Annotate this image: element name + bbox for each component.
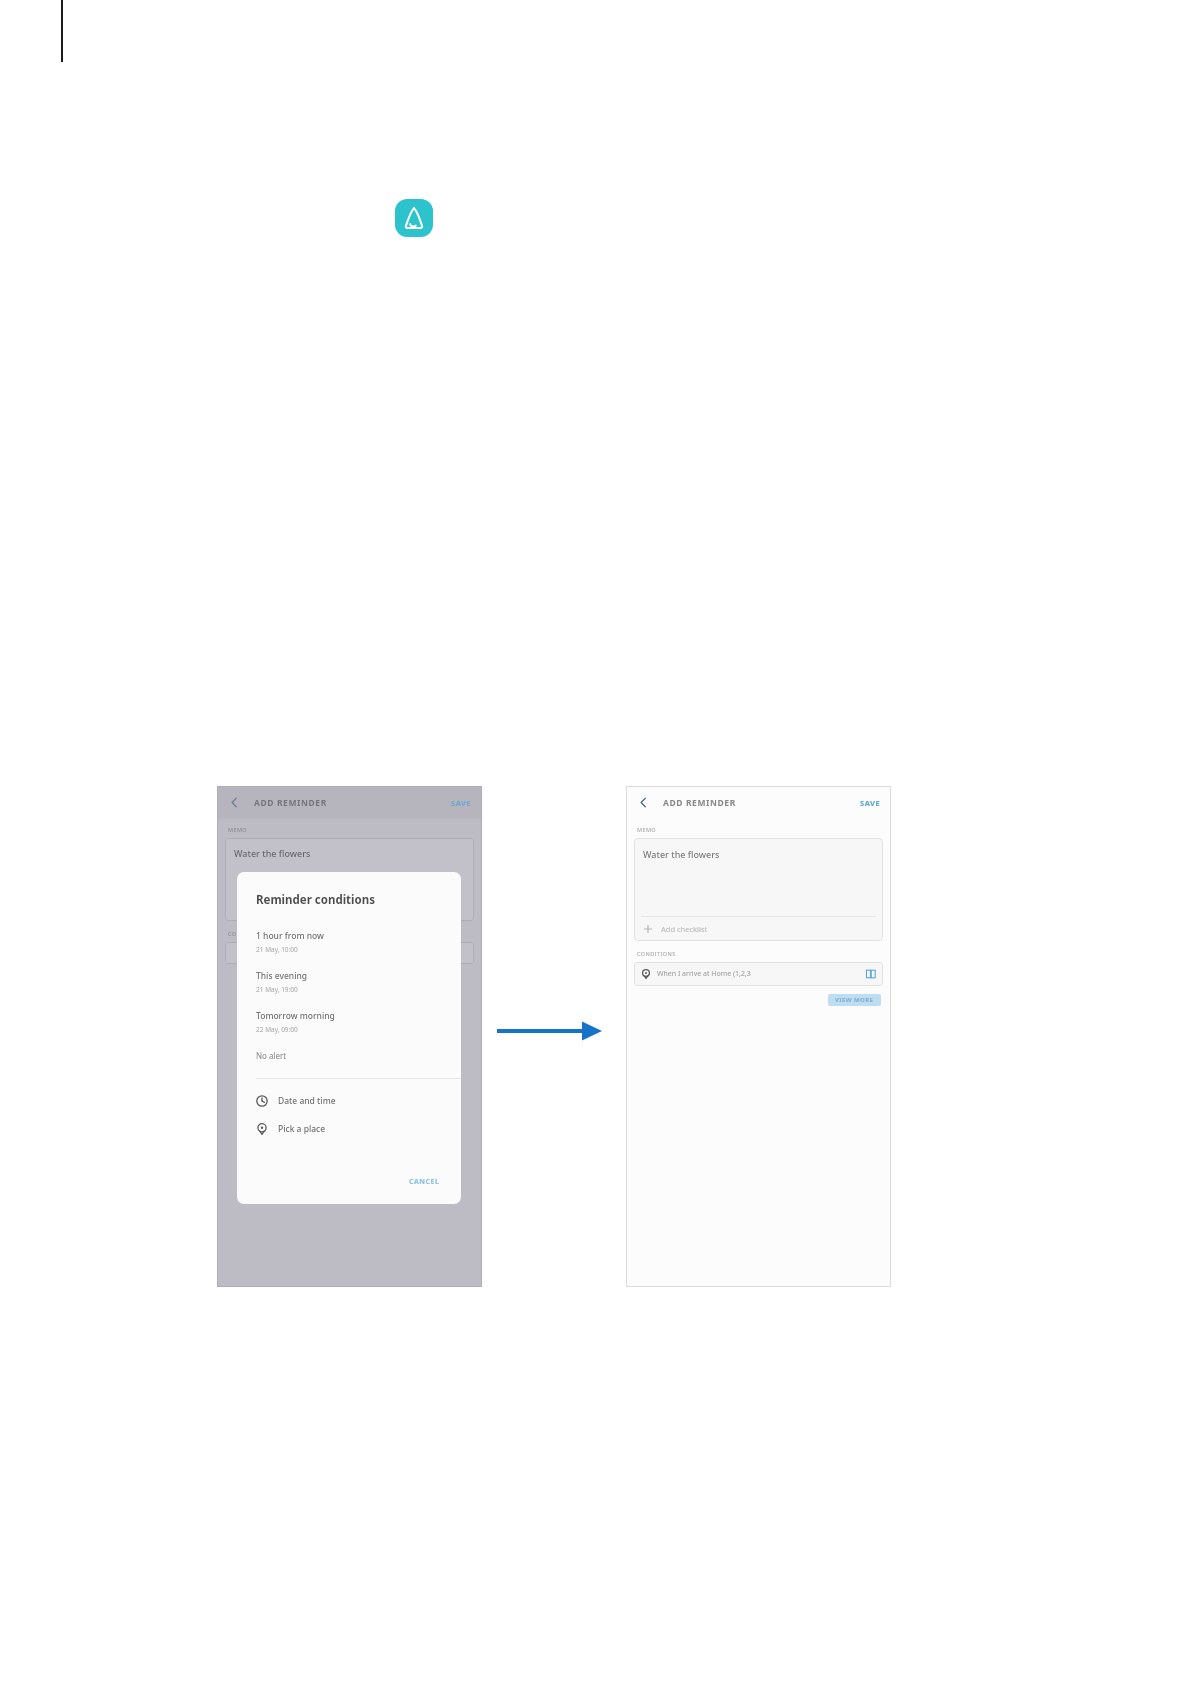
staticText: Water the flowers xyxy=(234,847,311,859)
button[interactable]: SAVE xyxy=(860,798,881,808)
button[interactable]: SAVE xyxy=(451,798,472,808)
staticText: SAVE xyxy=(860,798,881,808)
button[interactable]: When I arrive at Home (1,2,3 Street) xyxy=(634,962,883,986)
button[interactable]: Water the flowers xyxy=(225,838,474,921)
button[interactable]: Reminder app icon xyxy=(395,199,433,237)
staticText: Water the flowers xyxy=(643,848,720,860)
staticText: MEMO xyxy=(228,826,248,833)
button[interactable]: CANCEL xyxy=(405,1173,444,1191)
staticText: Tomorrow morning xyxy=(256,1010,335,1022)
staticText: VIEW MORE xyxy=(835,996,874,1004)
button[interactable]: VIEW MORE xyxy=(828,994,881,1006)
button[interactable] xyxy=(225,942,474,964)
staticText: CANCEL xyxy=(409,1177,440,1187)
staticText: Date and time xyxy=(278,1095,336,1107)
staticText: 1 hour from now xyxy=(256,930,324,942)
button[interactable]: No alert xyxy=(237,1050,461,1061)
staticText: MEMO xyxy=(637,826,657,833)
staticText: Add checklist xyxy=(661,924,708,934)
button[interactable]: Back xyxy=(636,795,651,810)
button[interactable]: Open map xyxy=(866,969,876,979)
button[interactable]: This evening xyxy=(237,970,461,994)
staticText: ADD REMINDER xyxy=(254,797,327,809)
staticText: No alert xyxy=(256,1050,287,1061)
staticText: CONDITIONS xyxy=(228,930,267,937)
staticText: Reminder conditions xyxy=(256,892,375,908)
staticText: CONDITIONS xyxy=(637,950,676,957)
button[interactable]: Date and time xyxy=(237,1095,461,1107)
staticText: When I arrive at Home (1,2,3 Street) xyxy=(657,969,761,979)
staticText: 21 May, 19:00 xyxy=(256,985,298,994)
staticText: This evening xyxy=(256,970,308,982)
staticText: SAVE xyxy=(451,798,472,808)
button[interactable]: Add checklist xyxy=(634,917,883,941)
button[interactable]: Pick a place xyxy=(237,1123,461,1135)
staticText: ADD REMINDER xyxy=(663,797,736,809)
button[interactable]: Back xyxy=(227,795,242,810)
staticText: 21 May, 10:00 xyxy=(256,945,298,954)
button[interactable]: Tomorrow morning xyxy=(237,1010,461,1034)
staticText: 22 May, 09:00 xyxy=(256,1025,298,1034)
staticText: Pick a place xyxy=(278,1123,326,1135)
button[interactable]: 1 hour from now xyxy=(237,930,461,954)
